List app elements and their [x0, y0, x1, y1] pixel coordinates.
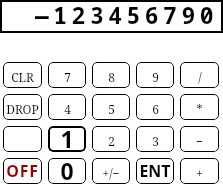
other: Display [0, 0, 223, 33]
button[interactable]: Add [180, 158, 219, 184]
button[interactable]: Drop [3, 94, 42, 120]
button[interactable]: Eight [92, 62, 130, 88]
staticText: 1 [60, 126, 74, 149]
button[interactable]: Divide [180, 62, 219, 88]
button[interactable]: Change sign [92, 158, 130, 184]
button[interactable]: Seven [48, 62, 86, 88]
button[interactable]: Zero [48, 158, 86, 184]
staticText: 8 [108, 69, 115, 85]
staticText: / [198, 69, 202, 85]
staticText: 5 [108, 101, 115, 117]
button[interactable]: Three [136, 126, 174, 152]
staticText: 2 [108, 133, 115, 149]
staticText: CLR [11, 69, 34, 85]
staticText: —123456790 [35, 0, 219, 30]
button[interactable]: Enter [136, 158, 174, 184]
staticText: − [196, 133, 203, 149]
staticText: 6 [152, 101, 159, 117]
staticText: 9 [152, 69, 159, 85]
button[interactable]: Five [92, 94, 130, 120]
staticText: 0 [60, 158, 74, 181]
staticText: OFF [6, 160, 39, 182]
staticText: 7 [64, 69, 71, 85]
staticText: + [196, 165, 203, 181]
staticText: ENT [139, 160, 171, 182]
button[interactable]: One [48, 126, 86, 152]
button[interactable]: Subtract [180, 126, 219, 152]
button[interactable]: Nine [136, 62, 174, 88]
staticText: 4 [64, 101, 71, 117]
button[interactable]: Four [48, 94, 86, 120]
staticText: * [196, 101, 203, 117]
staticText: 3 [152, 133, 159, 149]
button[interactable]: Multiply [180, 94, 219, 120]
button[interactable]: Off [3, 158, 42, 184]
button[interactable]: Two [92, 126, 130, 152]
staticText: DROP [6, 101, 39, 117]
button[interactable]: Six [136, 94, 174, 120]
button[interactable]: Clear [3, 62, 42, 88]
staticText: +/− [102, 165, 120, 181]
button[interactable]: Blank [3, 126, 42, 152]
